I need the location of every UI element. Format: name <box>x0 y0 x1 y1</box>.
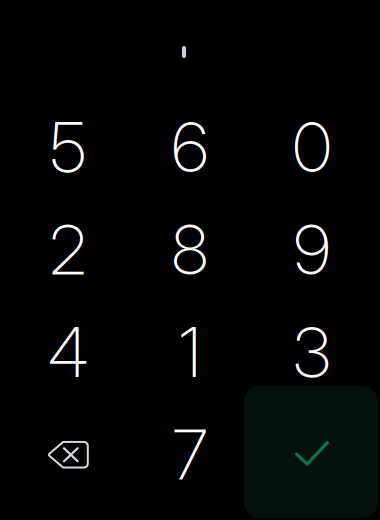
button[interactable]: 0 <box>251 96 373 198</box>
button[interactable]: 5 <box>7 96 129 198</box>
staticText: 7 <box>172 414 207 496</box>
staticText: 8 <box>171 209 208 291</box>
button[interactable]: 4 <box>7 301 129 403</box>
button[interactable]: Confirm <box>244 386 378 518</box>
staticText: 4 <box>48 311 88 393</box>
button[interactable]: 8 <box>129 198 251 301</box>
staticText: 5 <box>50 106 86 188</box>
staticText: 0 <box>292 106 331 188</box>
button[interactable]: 9 <box>251 198 373 301</box>
staticText: 1 <box>179 311 201 393</box>
button[interactable]: 1 <box>129 301 251 403</box>
button[interactable]: 2 <box>7 198 129 301</box>
staticText: 2 <box>49 209 86 291</box>
staticText: 6 <box>171 106 208 188</box>
button[interactable]: 3 <box>251 301 373 403</box>
button[interactable]: Delete <box>7 403 129 506</box>
staticText: 9 <box>293 209 330 291</box>
button[interactable]: 6 <box>129 96 251 198</box>
button[interactable]: 7 <box>129 403 251 506</box>
staticText: 3 <box>293 311 331 393</box>
